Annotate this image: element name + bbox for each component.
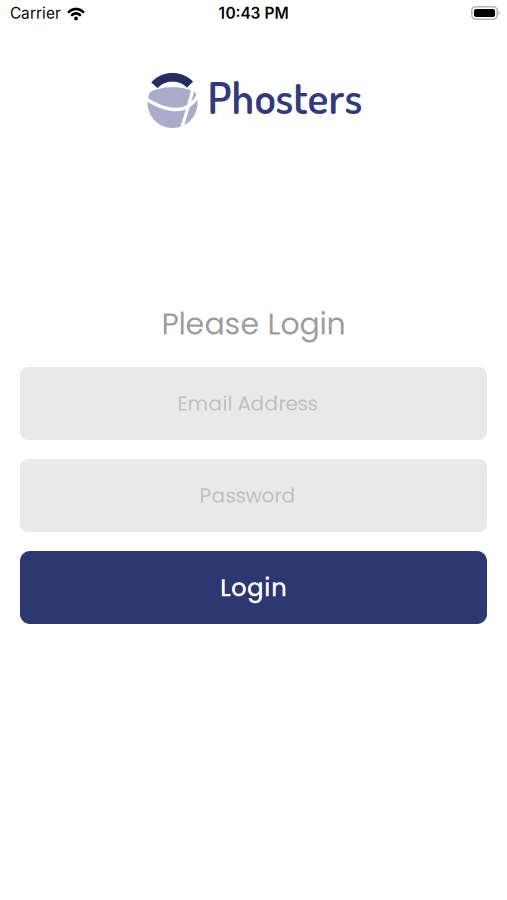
staticText: Carrier — [10, 4, 61, 22]
button[interactable]: Email Address — [20, 367, 487, 440]
button[interactable]: Login — [20, 551, 487, 624]
staticText: Email Address — [177, 389, 317, 417]
staticText: Please Login — [161, 303, 345, 345]
button[interactable]: Password — [20, 459, 487, 532]
staticText: Phosters — [207, 69, 362, 124]
staticText: Login — [220, 570, 287, 605]
staticText: 10:43 PM — [218, 4, 288, 22]
staticText: Password — [199, 481, 295, 509]
